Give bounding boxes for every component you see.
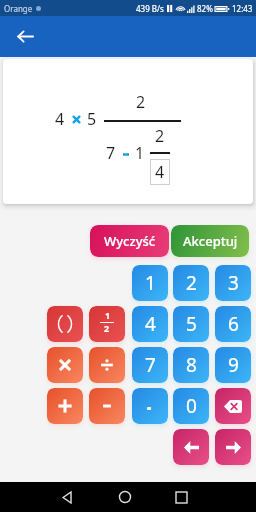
button[interactable]: Multiply (47, 347, 83, 383)
button[interactable]: Wyczyść (90, 225, 169, 257)
staticText: 2 (104, 322, 110, 334)
staticText: 82% (197, 3, 213, 14)
button[interactable]: Akceptuj (171, 225, 249, 257)
staticText: Orange (4, 3, 33, 14)
button[interactable]: 4 (132, 306, 168, 342)
button[interactable]: 5 (173, 306, 209, 342)
staticText: 0 (186, 393, 197, 419)
button[interactable]: Decimal point (132, 388, 168, 424)
staticText: 1 (105, 309, 111, 321)
button[interactable]: Divide (89, 347, 125, 383)
button[interactable]: Plus (47, 388, 83, 424)
staticText: 2 (136, 91, 146, 113)
button[interactable]: 2 (173, 265, 209, 301)
button[interactable]: 7 (132, 347, 168, 383)
button[interactable]: 8 (173, 347, 209, 383)
staticText: 1 (145, 270, 156, 296)
staticText: 4 (145, 311, 156, 337)
staticText: Akceptuj (183, 232, 238, 250)
staticText: 9 (228, 352, 239, 378)
staticText: 1 (135, 142, 145, 164)
button[interactable]: Backspace (215, 388, 251, 424)
staticText: 7 (106, 142, 116, 164)
staticText: 2 (186, 270, 197, 296)
staticText: 8 (186, 352, 197, 378)
button[interactable]: 1 (89, 306, 125, 342)
button[interactable]: Back (52, 482, 82, 512)
staticText: Wyczyść (104, 232, 156, 250)
button[interactable]: Minus (89, 388, 125, 424)
button[interactable]: Back (5, 16, 46, 57)
staticText: 439 B/s (136, 3, 164, 14)
button[interactable]: Recents (166, 482, 196, 512)
staticText: 4 (55, 108, 65, 130)
button[interactable]: 9 (215, 347, 251, 383)
staticText: 6 (228, 311, 239, 337)
button[interactable]: Left (173, 429, 209, 465)
button[interactable]: 1 (132, 265, 168, 301)
button[interactable]: 6 (215, 306, 251, 342)
staticText: 12:43 (232, 3, 253, 14)
staticText: 2 (155, 125, 165, 147)
staticText: 5 (87, 108, 97, 130)
button[interactable]: 0 (173, 388, 209, 424)
button[interactable]: Parentheses (47, 306, 83, 342)
button[interactable]: 3 (215, 265, 251, 301)
button[interactable]: Home (110, 482, 140, 512)
staticText: 7 (145, 352, 156, 378)
staticText: 5 (186, 311, 197, 337)
staticText: 4 (155, 161, 165, 183)
staticText: 3 (228, 270, 239, 296)
button[interactable]: Right (215, 429, 251, 465)
